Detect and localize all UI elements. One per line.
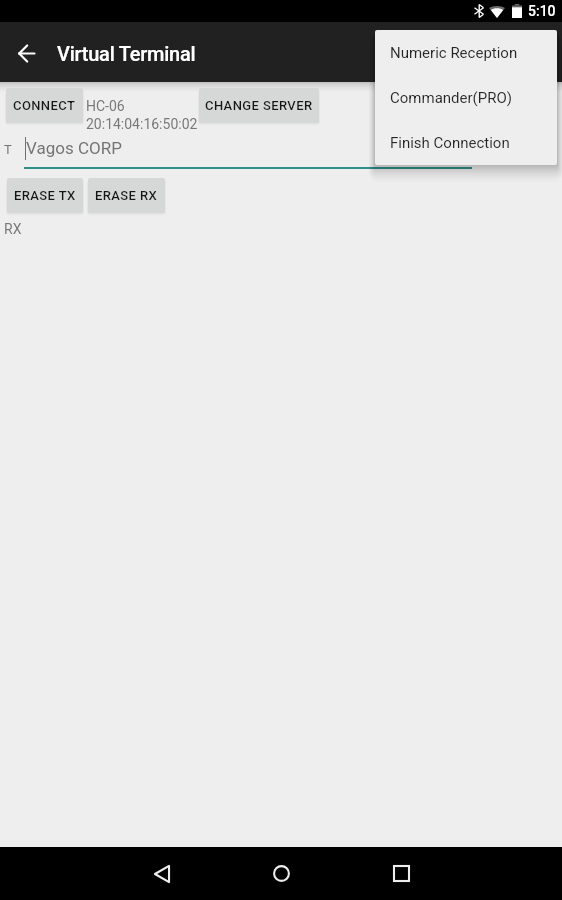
button[interactable]: Back bbox=[134, 847, 190, 900]
staticText: HC-06 bbox=[86, 98, 125, 114]
staticText: ERASE TX bbox=[14, 188, 76, 203]
button[interactable]: Recent apps bbox=[373, 847, 429, 900]
staticText: Finish Connection bbox=[390, 134, 510, 152]
staticText: ERASE RX bbox=[95, 188, 158, 203]
button[interactable]: ERASE RX bbox=[88, 178, 165, 213]
staticText: CONNECT bbox=[13, 98, 76, 113]
button[interactable]: CHANGE SERVER bbox=[199, 88, 319, 123]
button[interactable]: Finish Connection bbox=[375, 120, 557, 165]
staticText: T bbox=[4, 142, 12, 157]
staticText: CHANGE SERVER bbox=[205, 98, 313, 113]
button[interactable]: Home bbox=[253, 847, 309, 900]
button[interactable]: CONNECT bbox=[6, 88, 83, 123]
staticText: 5:10 bbox=[528, 3, 556, 19]
staticText: RX bbox=[4, 221, 22, 237]
staticText: Commander(PRO) bbox=[390, 89, 512, 107]
button[interactable]: ERASE TX bbox=[7, 178, 83, 213]
staticText: Virtual Terminal bbox=[57, 42, 196, 65]
button[interactable]: Navigate up bbox=[0, 22, 54, 82]
staticText: Vagos CORP bbox=[26, 138, 122, 158]
staticText: Numeric Reception bbox=[390, 44, 518, 62]
button[interactable]: Commander(PRO) bbox=[375, 75, 557, 120]
button[interactable]: Numeric Reception bbox=[375, 30, 557, 75]
staticText: 20:14:04:16:50:02 bbox=[86, 116, 198, 132]
